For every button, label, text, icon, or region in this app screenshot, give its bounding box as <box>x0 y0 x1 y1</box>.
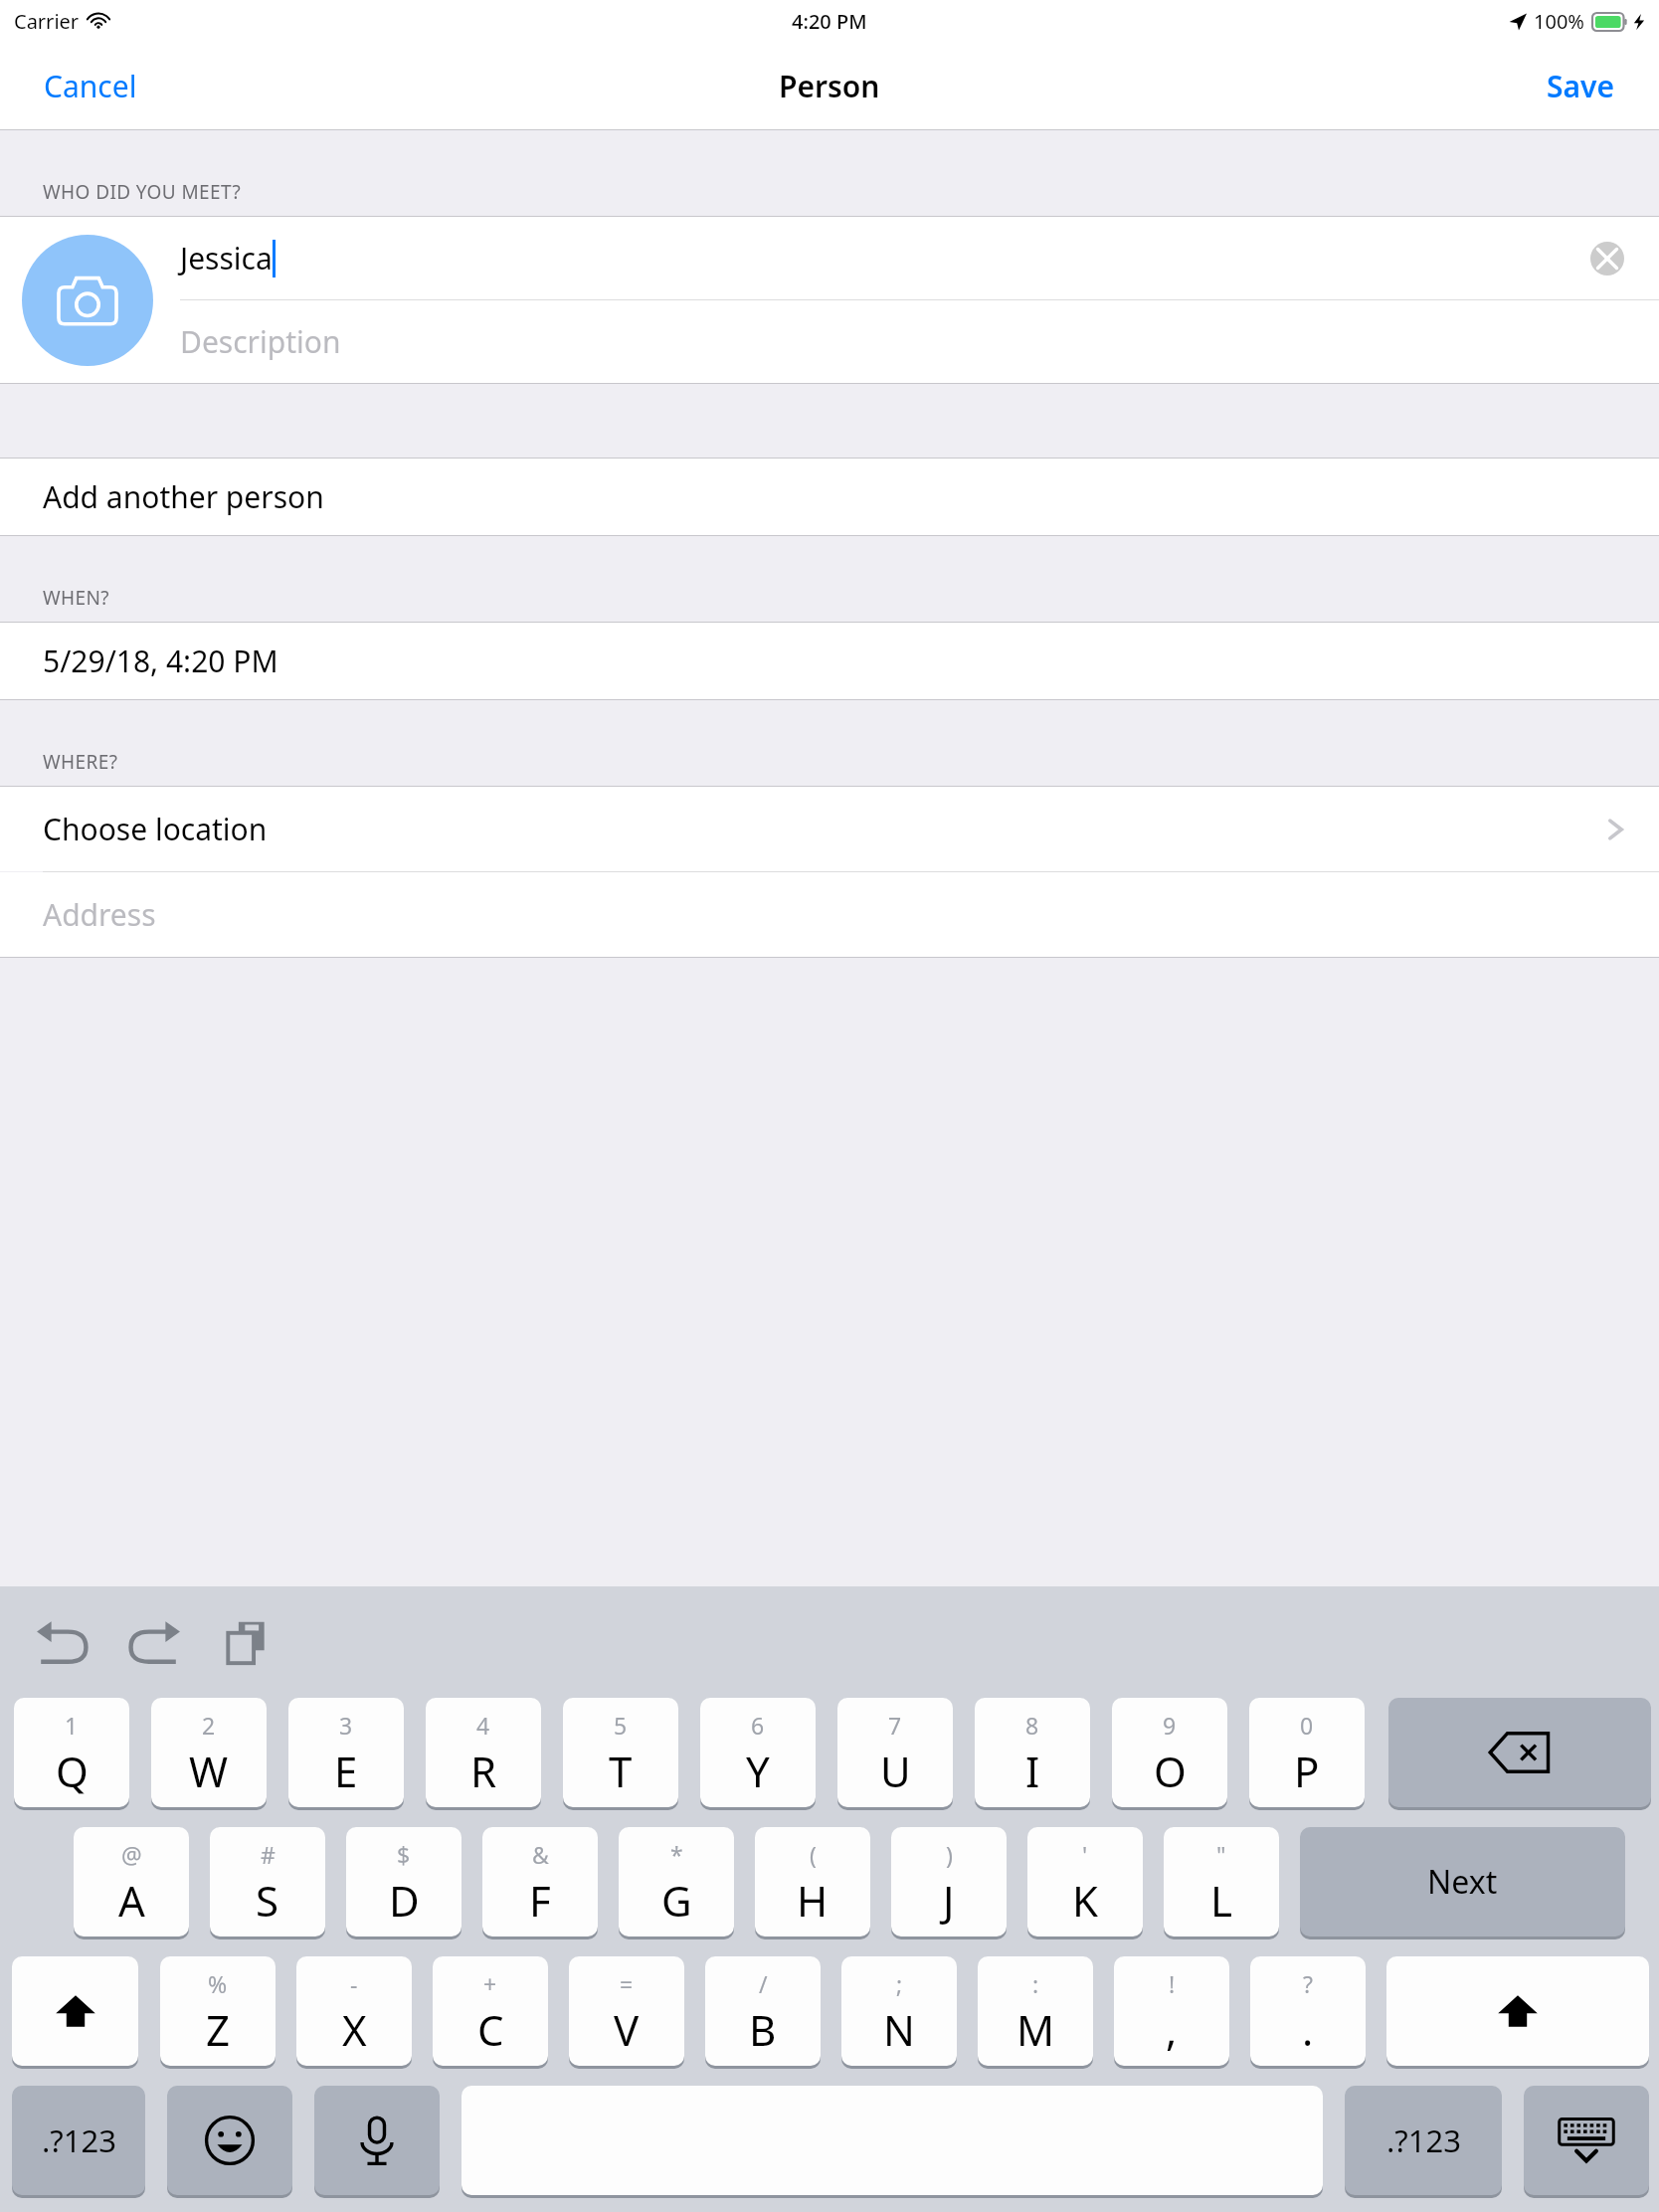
staticText: 9 <box>1163 1710 1177 1741</box>
button[interactable] <box>461 2086 1323 2198</box>
staticText: Person <box>779 66 880 106</box>
button[interactable]: " <box>1164 1827 1279 1939</box>
button[interactable]: 7 <box>837 1698 953 1810</box>
button[interactable]: 3 <box>288 1698 404 1810</box>
staticText: X <box>342 2001 367 2058</box>
staticText: L <box>1210 1872 1233 1929</box>
staticText: .?123 <box>1386 2120 1461 2161</box>
button[interactable]: Address <box>0 872 1659 957</box>
staticText: WHEN? <box>43 585 109 611</box>
button[interactable]: Next <box>1300 1827 1625 1939</box>
staticText: D <box>389 1872 420 1929</box>
staticText: + <box>483 1968 497 1999</box>
staticText: .?123 <box>42 2120 116 2161</box>
staticText: $ <box>397 1839 411 1870</box>
button[interactable]: @ <box>74 1827 189 1939</box>
staticText: 6 <box>751 1710 765 1741</box>
button[interactable]: 1 <box>14 1698 129 1810</box>
staticText: ; <box>896 1968 903 1999</box>
button[interactable]: Clear text <box>1585 237 1629 280</box>
staticText: 8 <box>1025 1710 1039 1741</box>
button[interactable]: & <box>482 1827 598 1939</box>
staticText: W <box>189 1743 229 1799</box>
button[interactable]: 5/29/18, 4:20 PM <box>0 623 1659 699</box>
staticText: 5/29/18, 4:20 PM <box>43 641 278 681</box>
button[interactable]: 6 <box>700 1698 816 1810</box>
staticText: 2 <box>202 1710 216 1741</box>
staticText: = <box>620 1968 634 1999</box>
staticText: H <box>797 1872 829 1929</box>
staticText: Q <box>56 1743 89 1799</box>
button[interactable]: = <box>569 1956 684 2069</box>
button[interactable]: - <box>296 1956 412 2069</box>
button[interactable]: Description <box>153 300 1659 383</box>
button[interactable]: ; <box>841 1956 957 2069</box>
staticText: Y <box>746 1743 770 1799</box>
staticText: 5 <box>614 1710 628 1741</box>
staticText: Carrier <box>14 8 80 35</box>
button[interactable]: ? <box>1250 1956 1366 2069</box>
button[interactable]: Add photo <box>22 235 153 366</box>
staticText: P <box>1294 1743 1320 1799</box>
staticText: 1 <box>65 1710 79 1741</box>
staticText: Address <box>43 894 156 935</box>
staticText: Jessica <box>180 238 273 278</box>
staticText: " <box>1216 1839 1226 1870</box>
button[interactable]: 4 <box>426 1698 541 1810</box>
button[interactable]: 9 <box>1112 1698 1227 1810</box>
staticText: A <box>118 1872 145 1929</box>
staticText: J <box>943 1872 955 1929</box>
button[interactable]: .?123 <box>1345 2086 1502 2198</box>
button[interactable]: Shift <box>1386 1956 1649 2069</box>
button[interactable]: ( <box>755 1827 870 1939</box>
staticText: ' <box>1082 1839 1088 1870</box>
button[interactable]: ) <box>891 1827 1007 1939</box>
button[interactable]: + <box>433 1956 548 2069</box>
staticText: Next <box>1427 1860 1498 1904</box>
staticText: ) <box>946 1839 953 1870</box>
staticText: O <box>1154 1743 1187 1799</box>
staticText: M <box>1016 2001 1055 2058</box>
button[interactable]: ' <box>1027 1827 1143 1939</box>
button[interactable]: $ <box>346 1827 461 1939</box>
button[interactable]: Shift <box>12 1956 138 2069</box>
button[interactable]: 8 <box>975 1698 1090 1810</box>
button[interactable]: Emoji <box>167 2086 292 2198</box>
staticText: 3 <box>339 1710 353 1741</box>
button[interactable]: Backspace <box>1388 1698 1651 1810</box>
button[interactable]: ! <box>1114 1956 1229 2069</box>
button[interactable]: Save <box>1503 48 1659 124</box>
button[interactable]: % <box>160 1956 276 2069</box>
staticText: I <box>1025 1743 1040 1799</box>
button[interactable]: Add another person <box>0 459 1659 535</box>
button[interactable]: 0 <box>1249 1698 1365 1810</box>
button[interactable]: Paste <box>213 1606 284 1678</box>
button[interactable]: : <box>978 1956 1093 2069</box>
button[interactable]: 5 <box>563 1698 678 1810</box>
button[interactable]: .?123 <box>12 2086 145 2198</box>
staticText: , <box>1166 2001 1178 2058</box>
button[interactable]: / <box>705 1956 821 2069</box>
button[interactable]: * <box>619 1827 734 1939</box>
button[interactable]: Redo <box>119 1606 191 1678</box>
staticText: R <box>470 1743 497 1799</box>
staticText: # <box>261 1839 276 1870</box>
staticText: - <box>350 1968 358 1999</box>
staticText: 4 <box>476 1710 490 1741</box>
staticText: 4:20 PM <box>792 8 867 35</box>
button[interactable]: Undo <box>26 1606 97 1678</box>
staticText: * <box>670 1839 683 1870</box>
button[interactable]: 2 <box>151 1698 267 1810</box>
staticText: 100% <box>1534 8 1584 35</box>
button[interactable]: Cancel <box>0 48 181 124</box>
button[interactable]: # <box>210 1827 325 1939</box>
staticText: 0 <box>1300 1710 1314 1741</box>
button[interactable]: Dictation <box>314 2086 440 2198</box>
button[interactable]: Jessica <box>153 217 1659 299</box>
staticText: . <box>1302 2001 1314 2058</box>
button[interactable]: Choose location <box>0 787 1659 871</box>
staticText: K <box>1072 1872 1098 1929</box>
staticText: C <box>477 2001 504 2058</box>
button[interactable]: Hide keyboard <box>1524 2086 1649 2198</box>
staticText: ! <box>1169 1968 1176 1999</box>
